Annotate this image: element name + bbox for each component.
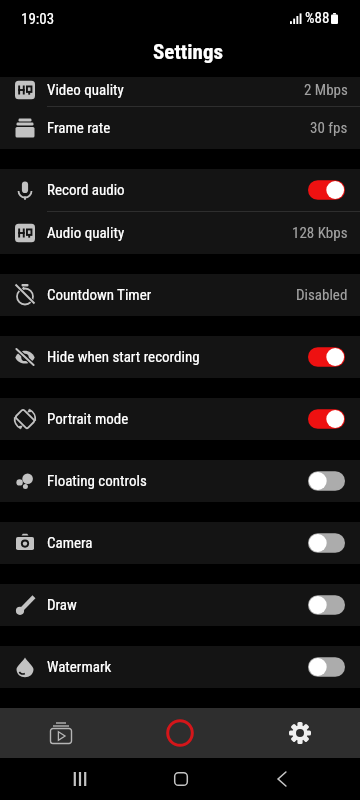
button[interactable]: Record audio (0, 169, 360, 211)
staticText: Disabled (296, 286, 348, 304)
button[interactable] (308, 469, 345, 493)
staticText: Audio quality (47, 224, 125, 242)
staticText: Video quality (47, 81, 124, 99)
staticText: Camera (47, 534, 93, 552)
staticText: Portrait mode (47, 410, 129, 428)
button[interactable]: Watermark (0, 646, 360, 688)
button[interactable]: Frame rate (0, 107, 360, 149)
staticText: Floating controls (47, 472, 147, 490)
button[interactable]: Countdown Timer (0, 274, 360, 316)
button[interactable]: Video quality (0, 77, 360, 106)
button[interactable]: Recents (56, 758, 104, 800)
button[interactable] (308, 178, 345, 202)
button[interactable]: Home (157, 758, 205, 800)
staticText: Hide when start recording (47, 348, 200, 366)
staticText: 128 Kbps (292, 224, 348, 242)
button[interactable] (308, 531, 345, 555)
staticText: %88 (305, 9, 330, 27)
button[interactable] (308, 345, 345, 369)
button[interactable]: Hide when start recording (0, 336, 360, 378)
button[interactable]: Camera (0, 522, 360, 564)
button[interactable] (308, 407, 345, 431)
button[interactable]: Record (152, 708, 208, 758)
button[interactable]: Floating controls (0, 460, 360, 502)
staticText: 19:03 (21, 10, 55, 28)
staticText: Draw (47, 596, 77, 614)
staticText: Record audio (47, 181, 125, 199)
staticText: Frame rate (47, 119, 111, 137)
button[interactable]: Settings (269, 708, 330, 758)
staticText: Countdown Timer (47, 286, 152, 304)
button[interactable] (308, 655, 345, 679)
button[interactable]: Back (258, 758, 306, 800)
button[interactable] (308, 593, 345, 617)
staticText: 30 fps (310, 119, 348, 137)
button[interactable]: Draw (0, 584, 360, 626)
staticText: Watermark (47, 658, 112, 676)
button[interactable]: Portrait mode (0, 398, 360, 440)
button[interactable]: Audio quality (0, 212, 360, 254)
button[interactable]: Videos (30, 708, 91, 758)
staticText: 2 Mbps (304, 81, 348, 99)
staticText: Settings (153, 40, 223, 65)
